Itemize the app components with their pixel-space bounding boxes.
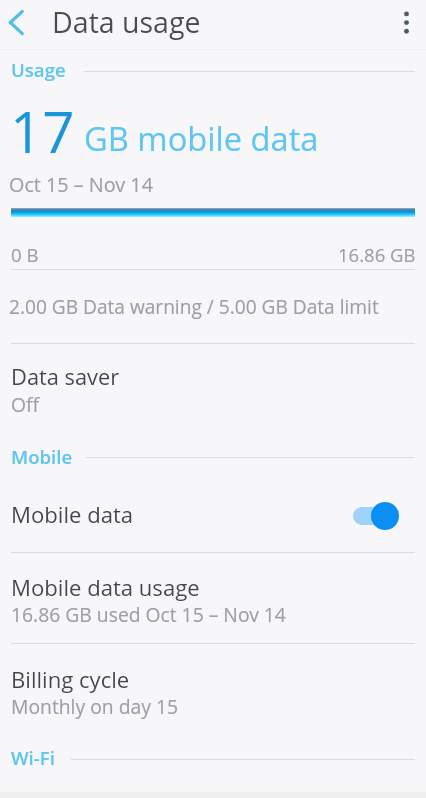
staticText: Data usage — [52, 3, 201, 42]
staticText: Mobile — [11, 444, 73, 469]
staticText: GB mobile data — [84, 116, 319, 160]
button[interactable]: Navigate up — [0, 0, 44, 46]
staticText: Usage — [11, 57, 66, 82]
staticText: Off — [11, 391, 40, 417]
staticText: Billing cycle — [11, 664, 130, 694]
staticText: Wi-Fi — [11, 745, 55, 770]
button[interactable] — [0, 485, 426, 552]
button[interactable] — [0, 344, 426, 456]
button[interactable] — [0, 442, 426, 472]
staticText: 2.00 GB Data warning / 5.00 GB Data limi… — [9, 294, 379, 320]
staticText: Oct 15 – Nov 14 — [9, 171, 153, 198]
staticText: Mobile data — [11, 499, 134, 529]
staticText: Monthly on day 15 — [11, 693, 179, 719]
button[interactable] — [0, 644, 426, 734]
staticText: Mobile data usage — [11, 572, 200, 602]
staticText: 16.86 GB — [338, 242, 416, 267]
staticText: 0 B — [11, 242, 39, 267]
button[interactable] — [0, 55, 426, 85]
button[interactable] — [0, 743, 426, 773]
staticText: 16.86 GB used Oct 15 – Nov 14 — [11, 601, 286, 627]
staticText: 17 — [10, 93, 75, 170]
button[interactable]: More options — [384, 0, 426, 46]
staticText: Data saver — [11, 362, 120, 392]
button[interactable] — [0, 553, 426, 643]
